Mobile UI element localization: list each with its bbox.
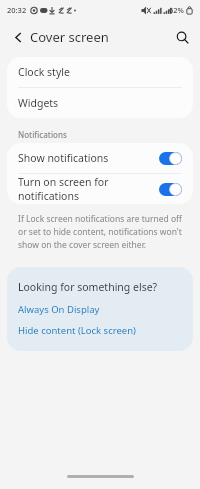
staticText: Turn on screen for notifications [18, 175, 153, 203]
button[interactable]: Turn on screen for notifications [7, 174, 193, 204]
button[interactable]: Always On Display [18, 303, 100, 316]
staticText: Notifications [18, 129, 67, 140]
button[interactable]: Clock style [7, 57, 193, 87]
staticText: Clock style [18, 65, 70, 79]
button[interactable]: Back [6, 25, 30, 49]
staticText: Widgets [18, 96, 59, 110]
staticText: If Lock screen notifications are turned … [18, 213, 182, 251]
staticText: Always On Display [18, 303, 100, 316]
button[interactable]: Hide content (Lock screen) [18, 324, 136, 337]
staticText: Hide content (Lock screen) [18, 324, 136, 337]
staticText: Show notifications [18, 151, 153, 165]
button[interactable]: Toggle [159, 152, 182, 165]
button[interactable]: Widgets [7, 88, 193, 118]
staticText: 62% [169, 5, 184, 15]
staticText: Looking for something else? [18, 280, 158, 294]
button[interactable]: Show notifications [7, 143, 193, 173]
button[interactable]: Toggle [159, 183, 182, 196]
button[interactable]: Search [170, 25, 194, 49]
staticText: 20:32 [7, 5, 27, 15]
staticText: Cover screen [30, 28, 109, 46]
